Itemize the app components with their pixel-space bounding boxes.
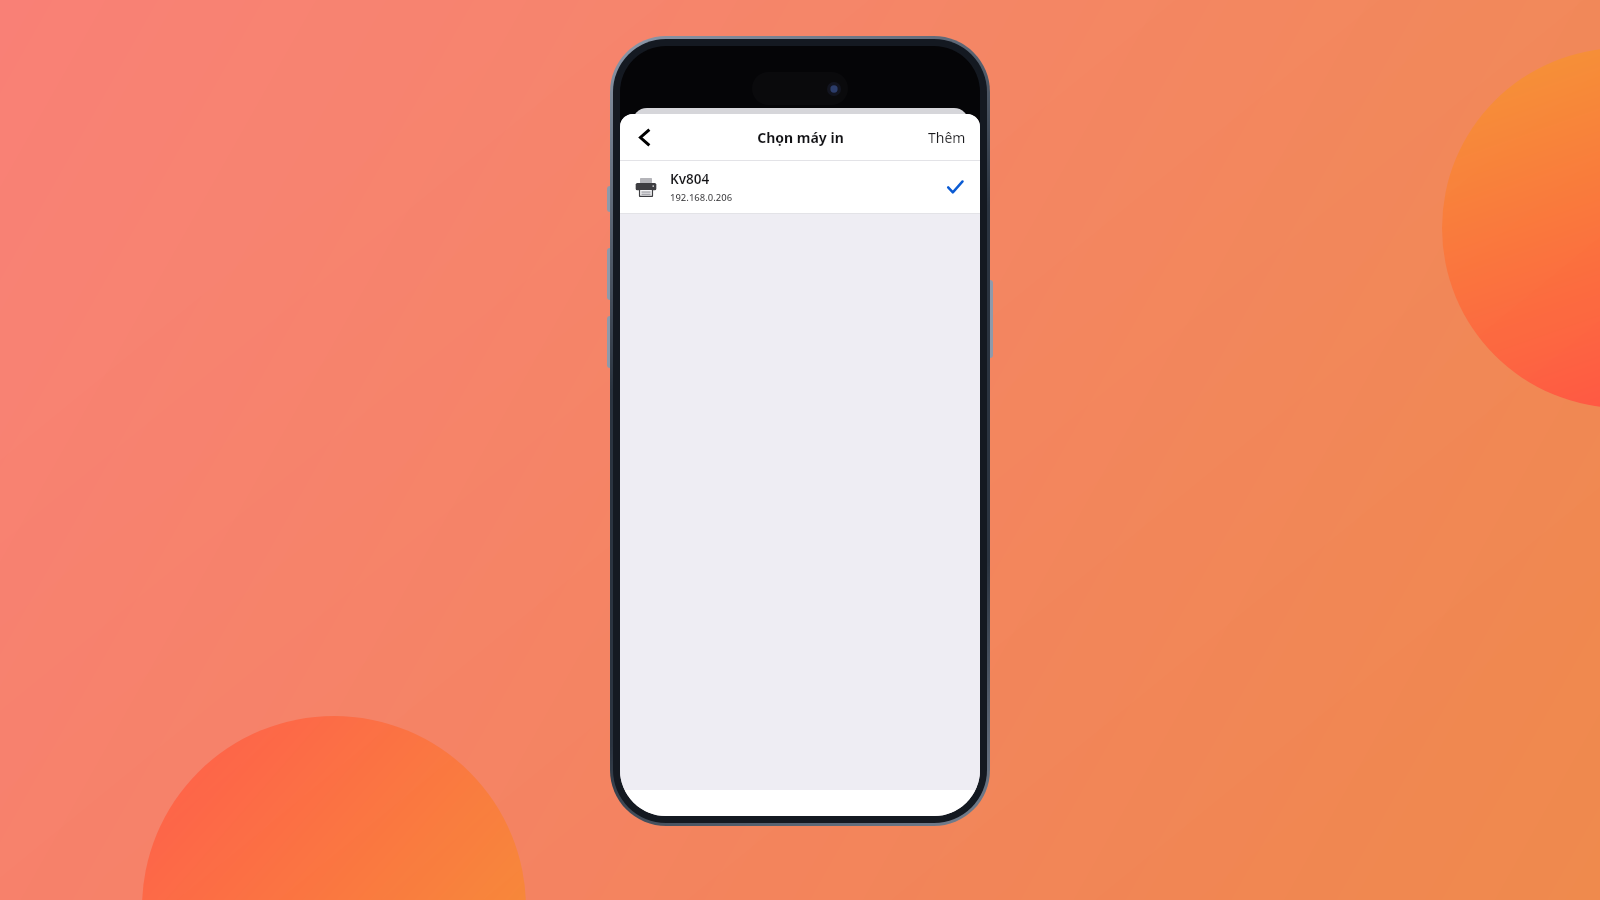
staticText: Chọn máy in xyxy=(757,128,844,147)
staticText: Thêm xyxy=(928,128,966,147)
staticText: Kv804 xyxy=(670,170,710,188)
staticText: 192.168.0.206 xyxy=(670,191,733,204)
button[interactable]: Kv804 xyxy=(620,161,980,213)
button[interactable]: Thêm xyxy=(920,122,974,153)
button[interactable]: Back xyxy=(620,114,668,160)
